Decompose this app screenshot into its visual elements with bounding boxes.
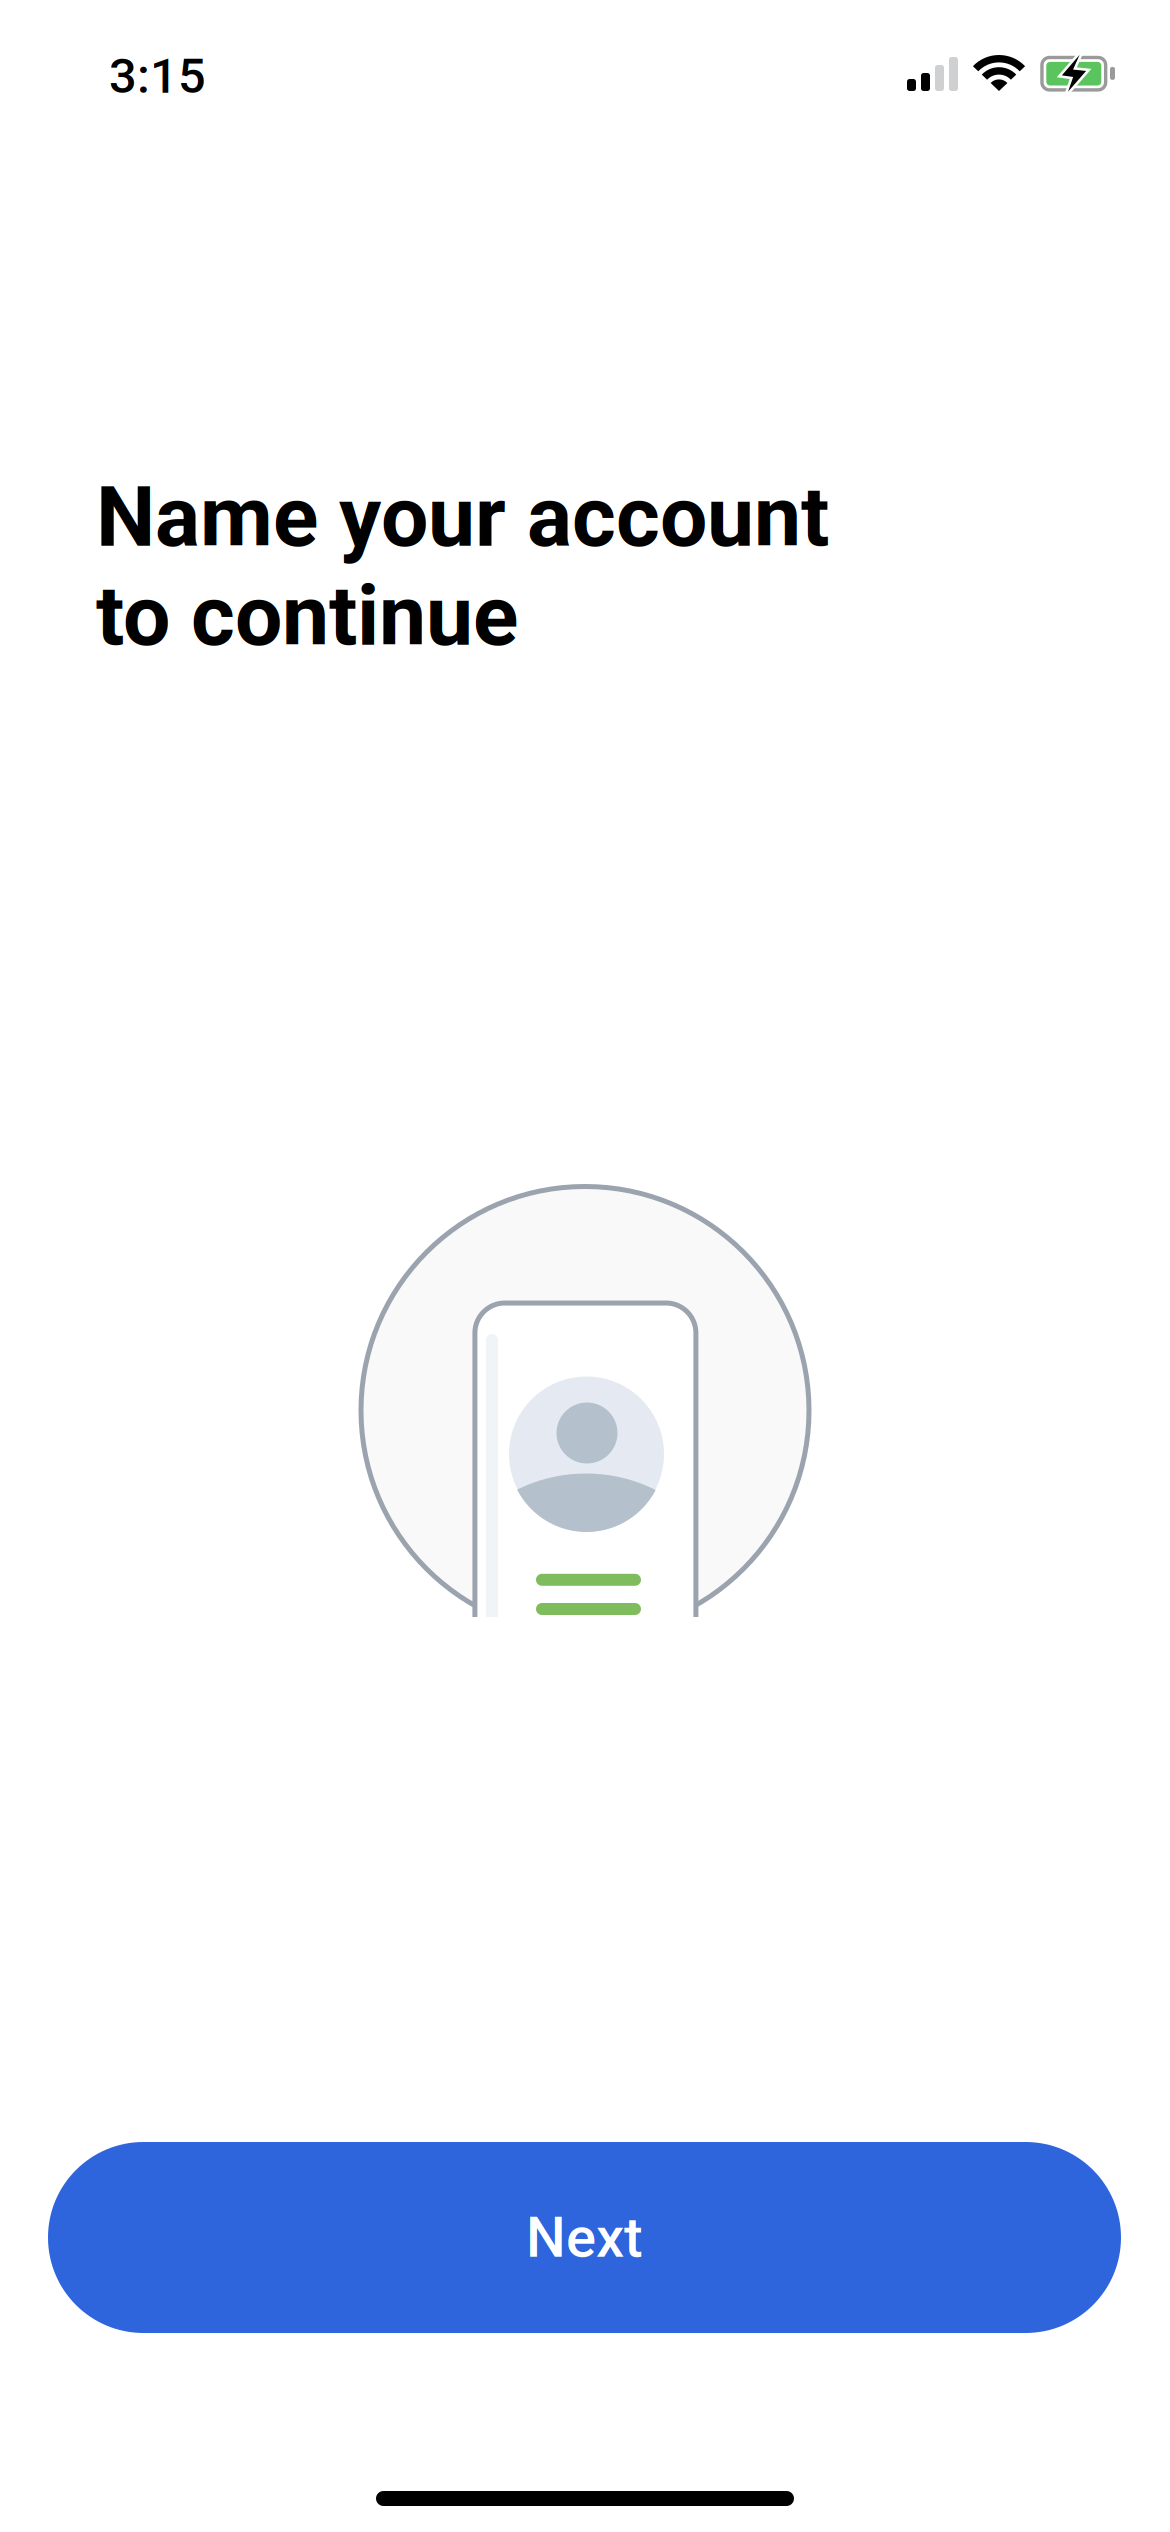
staticText: 3:15 [109,47,206,104]
button[interactable]: Next [48,2142,1121,2333]
staticText: to continue [96,567,518,665]
staticText: Name your account [96,468,829,566]
staticText: Next [526,2205,643,2270]
